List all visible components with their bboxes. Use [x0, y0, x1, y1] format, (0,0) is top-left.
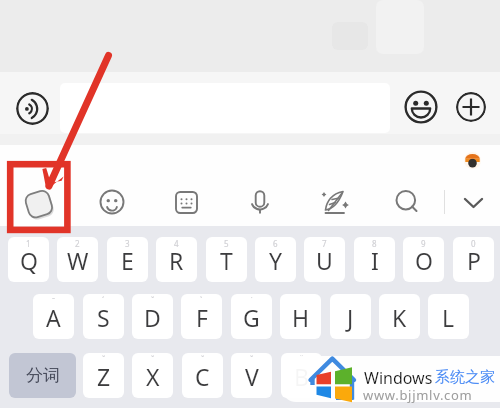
staticText: 0	[471, 238, 476, 249]
button[interactable]: 分词	[9, 353, 76, 398]
button[interactable]	[60, 83, 390, 133]
staticText: F	[196, 302, 208, 333]
button[interactable]: 2	[57, 237, 98, 282]
button[interactable]: 5	[206, 237, 247, 282]
staticText: Z	[97, 361, 111, 392]
button[interactable]: 9	[403, 237, 444, 282]
button[interactable]: More options	[456, 92, 486, 122]
staticText: ˇ	[151, 354, 155, 365]
button[interactable]: ˙	[231, 294, 272, 339]
staticText: 8	[372, 238, 377, 249]
button[interactable]: Voice input	[16, 92, 49, 125]
staticText: T	[220, 245, 233, 276]
staticText: ˇ	[250, 354, 254, 365]
button[interactable]: ˇ	[182, 353, 223, 398]
button[interactable]: L	[428, 294, 469, 339]
staticText: 9	[421, 238, 426, 249]
button[interactable]: Search	[393, 188, 421, 216]
button[interactable]: Stickers	[22, 187, 57, 222]
button[interactable]: Hide keyboard	[459, 188, 488, 217]
staticText: 4	[174, 238, 179, 249]
staticText: I	[371, 245, 379, 276]
staticText: www.bjjmlv.com	[363, 386, 473, 404]
staticText: A	[46, 302, 61, 333]
staticText: Windows	[364, 367, 433, 389]
button[interactable]: ˇ	[281, 353, 322, 398]
button[interactable]: ˇ	[231, 353, 272, 398]
staticText: S	[97, 302, 110, 333]
button[interactable]: ˉ	[33, 294, 74, 339]
staticText: ˇ	[151, 295, 155, 306]
staticText: ˉ	[52, 295, 56, 306]
staticText: P	[467, 245, 481, 276]
staticText: H	[292, 302, 310, 333]
button[interactable]: 7	[304, 237, 345, 282]
staticText: 分词	[26, 365, 60, 386]
staticText: ˊ	[102, 295, 105, 306]
staticText: ˇ	[102, 354, 106, 365]
button[interactable]: 0	[453, 237, 494, 282]
staticText: 7	[322, 238, 327, 249]
staticText: L	[442, 302, 455, 333]
staticText: Q	[20, 245, 38, 276]
button[interactable]: Emoji keyboard	[98, 188, 126, 216]
staticText: Y	[269, 245, 283, 276]
staticText: R	[169, 245, 184, 276]
button[interactable]: 8	[354, 237, 395, 282]
button[interactable]: ˇ	[132, 353, 173, 398]
button[interactable]: ˇ	[83, 353, 124, 398]
button[interactable]: Voice input	[246, 188, 274, 216]
staticText: K	[392, 302, 407, 333]
button[interactable]: Handwriting	[319, 187, 349, 217]
staticText: G	[243, 302, 260, 333]
staticText: 6	[273, 238, 278, 249]
button[interactable]: 3	[107, 237, 148, 282]
staticText: W	[67, 245, 89, 276]
staticText: ˇ	[201, 354, 205, 365]
staticText: 5	[224, 238, 229, 249]
staticText: O	[415, 245, 433, 276]
staticText: ˋ	[200, 295, 203, 306]
staticText: V	[245, 361, 259, 392]
button[interactable]: 6	[255, 237, 296, 282]
staticText: D	[144, 302, 161, 333]
staticText: 3	[125, 238, 130, 249]
button[interactable]: Emoji	[404, 90, 438, 124]
button[interactable]: H	[280, 294, 321, 339]
staticText: 2	[75, 238, 80, 249]
staticText: E	[121, 245, 134, 276]
staticText: 1	[26, 238, 31, 249]
button[interactable]: ˇ	[132, 294, 173, 339]
staticText: U	[316, 245, 333, 276]
staticText: C	[195, 361, 210, 392]
staticText: B	[294, 361, 309, 392]
button[interactable]: Keyboard	[175, 191, 198, 214]
button[interactable]: J	[330, 294, 371, 339]
staticText: 系统之家	[435, 368, 495, 387]
staticText: J	[347, 302, 354, 333]
staticText: ˇ	[300, 354, 304, 365]
button[interactable]: K	[379, 294, 420, 339]
button[interactable]: ˊ	[83, 294, 124, 339]
staticText: X	[146, 361, 160, 392]
button[interactable]: ˋ	[181, 294, 222, 339]
button[interactable]: 4	[156, 237, 197, 282]
staticText: ˙	[251, 295, 253, 306]
button[interactable]: 1	[8, 237, 49, 282]
